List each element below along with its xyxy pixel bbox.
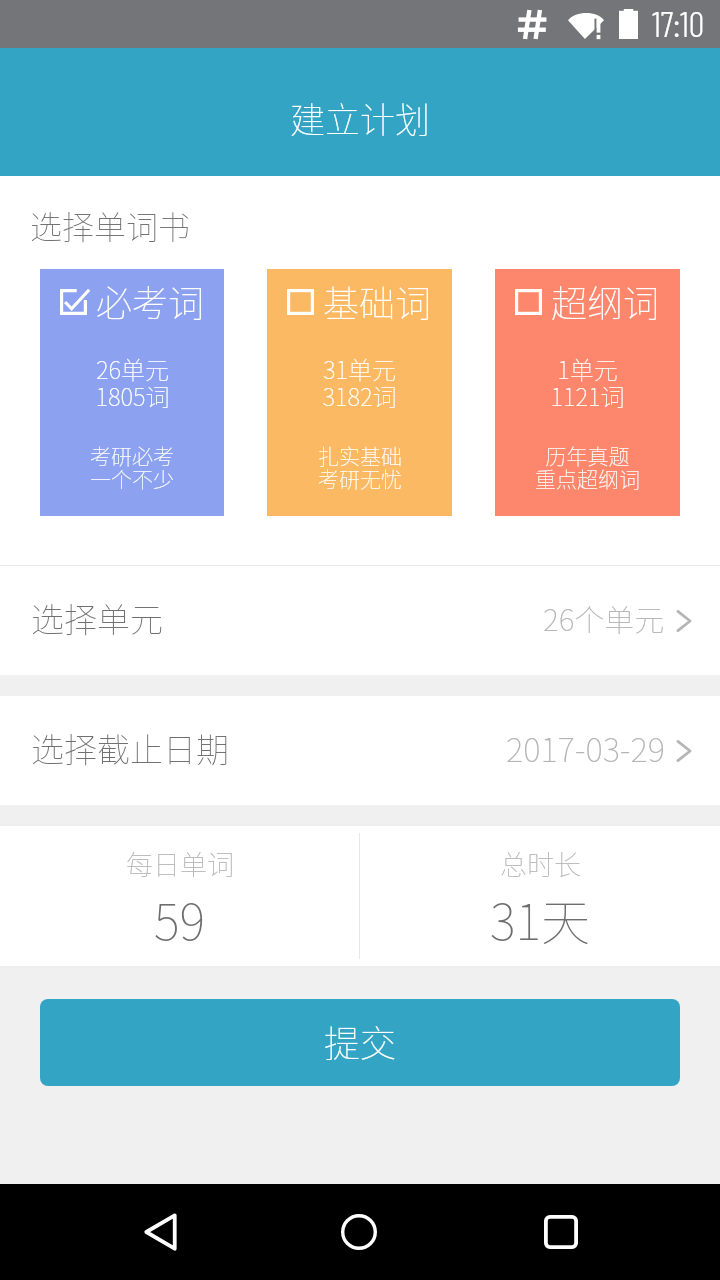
staticText: 每日单词 bbox=[126, 844, 234, 883]
button[interactable]: 选择单元 bbox=[0, 566, 720, 675]
staticText: 考研必考 一个不少 bbox=[90, 440, 174, 493]
button[interactable]: 选择截止日期 bbox=[0, 696, 720, 805]
staticText: 总时长 bbox=[500, 844, 581, 883]
button[interactable]: 超纲词 bbox=[495, 269, 680, 516]
button[interactable]: Recent apps bbox=[521, 1184, 601, 1280]
staticText: 26单元 1805词 bbox=[95, 351, 170, 413]
staticText: 建立计划 bbox=[290, 92, 431, 143]
staticText: 选择截止日期 bbox=[31, 724, 229, 772]
button[interactable]: Home bbox=[319, 1184, 399, 1280]
staticText: 必考词 bbox=[96, 275, 205, 327]
button[interactable]: 提交 bbox=[40, 999, 680, 1086]
staticText: 17:10 bbox=[652, 2, 705, 44]
staticText: 超纲词 bbox=[551, 275, 660, 327]
staticText: 26个单元 bbox=[543, 596, 665, 639]
staticText: 31单元 3182词 bbox=[322, 351, 397, 413]
button[interactable]: Back bbox=[120, 1184, 200, 1280]
staticText: 基础词 bbox=[323, 275, 432, 327]
staticText: 选择单元 bbox=[31, 594, 163, 642]
staticText: 31天 bbox=[490, 883, 591, 954]
staticText: 历年真题 重点超纲词 bbox=[535, 440, 640, 493]
staticText: 选择单词书 bbox=[30, 202, 191, 248]
staticText: 59 bbox=[154, 883, 206, 954]
button[interactable]: 必考词 bbox=[40, 269, 224, 516]
staticText: 2017-03-29 bbox=[506, 724, 665, 772]
button[interactable]: 基础词 bbox=[267, 269, 452, 516]
staticText: 提交 bbox=[324, 1015, 397, 1067]
staticText: 扎实基础 考研无忧 bbox=[318, 440, 402, 493]
staticText: 1单元 1121词 bbox=[550, 351, 625, 413]
